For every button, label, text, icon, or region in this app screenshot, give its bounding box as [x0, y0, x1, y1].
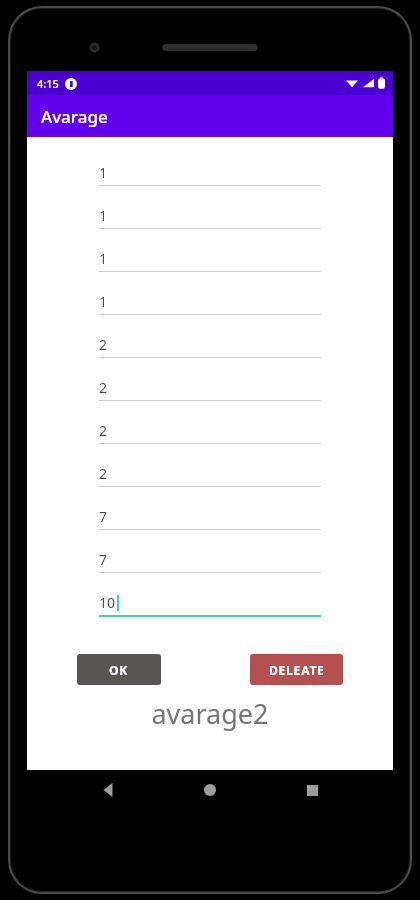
button[interactable]: OK — [77, 654, 161, 685]
button[interactable]: 2 — [27, 421, 393, 464]
staticText: 2 — [99, 378, 108, 397]
staticText: 1 — [99, 206, 108, 225]
button[interactable]: Home — [190, 770, 230, 810]
button[interactable]: DELEATE — [250, 654, 343, 685]
button[interactable]: Recent apps — [292, 770, 332, 810]
staticText: 2 — [99, 464, 108, 483]
button[interactable]: Back — [89, 770, 129, 810]
button[interactable]: 10 — [27, 593, 393, 636]
staticText: 1 — [99, 292, 108, 311]
staticText: Avarage — [41, 105, 108, 128]
button[interactable]: 2 — [27, 378, 393, 421]
staticText: 2 — [99, 421, 108, 440]
button[interactable]: 1 — [27, 206, 393, 249]
button[interactable]: 1 — [27, 249, 393, 292]
staticText: 4:15 — [37, 76, 59, 91]
staticText: 10 — [99, 593, 116, 612]
staticText: 7 — [99, 550, 108, 569]
staticText: DELEATE — [269, 662, 325, 678]
staticText: 7 — [99, 507, 108, 526]
staticText: 1 — [99, 163, 108, 182]
staticText: OK — [109, 662, 129, 678]
button[interactable]: 1 — [27, 292, 393, 335]
button[interactable]: 2 — [27, 335, 393, 378]
button[interactable]: 7 — [27, 550, 393, 593]
button[interactable]: 7 — [27, 507, 393, 550]
button[interactable]: 1 — [27, 163, 393, 206]
staticText: 2 — [99, 335, 108, 354]
button[interactable]: 2 — [27, 464, 393, 507]
staticText: avarage2 — [27, 695, 393, 732]
staticText: 1 — [99, 249, 108, 268]
